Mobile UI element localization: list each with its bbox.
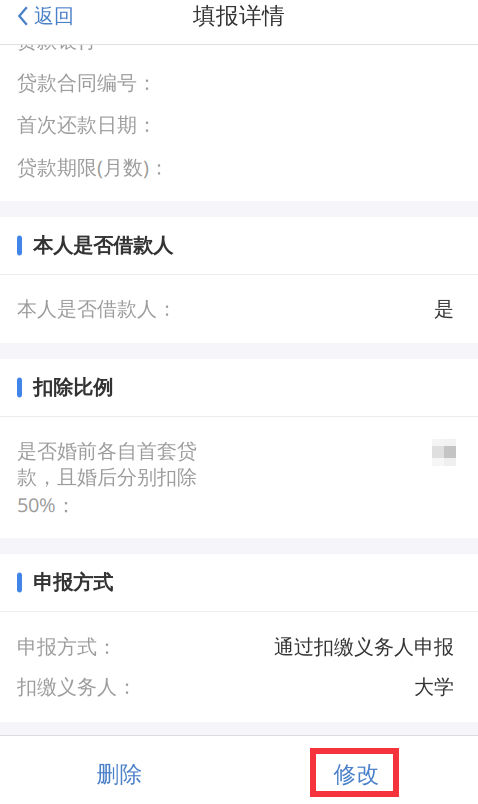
staticText: 申报方式： <box>17 635 117 659</box>
staticText: 是否婚前各自首套贷 <box>17 439 197 464</box>
staticText: 填报详情 <box>193 2 285 30</box>
button[interactable]: 删除 <box>0 745 239 804</box>
staticText: 本人是否借款人 <box>33 233 173 258</box>
button[interactable]: 修改 <box>239 745 478 804</box>
staticText: 大学 <box>414 675 454 699</box>
staticText: 款，且婚后分别扣除 <box>17 465 197 490</box>
staticText: 返回 <box>34 4 74 28</box>
button[interactable]: 返回 <box>0 0 86 32</box>
staticText: 贷款期限(月数)： <box>17 154 169 180</box>
staticText: 贷款银行 <box>17 28 97 53</box>
staticText: 修改 <box>333 761 379 788</box>
staticText: 贷款合同编号： <box>17 71 157 95</box>
staticText: 扣除比例 <box>33 375 113 400</box>
staticText: 本人是否借款人： <box>17 297 177 321</box>
staticText: 申报方式 <box>33 570 113 595</box>
staticText: 是 <box>434 297 454 321</box>
staticText: 删除 <box>96 761 142 788</box>
staticText: 通过扣缴义务人申报 <box>274 635 454 659</box>
staticText: 50%： <box>17 491 76 518</box>
staticText: 首次还款日期： <box>17 113 157 137</box>
staticText: 扣缴义务人： <box>17 675 137 699</box>
